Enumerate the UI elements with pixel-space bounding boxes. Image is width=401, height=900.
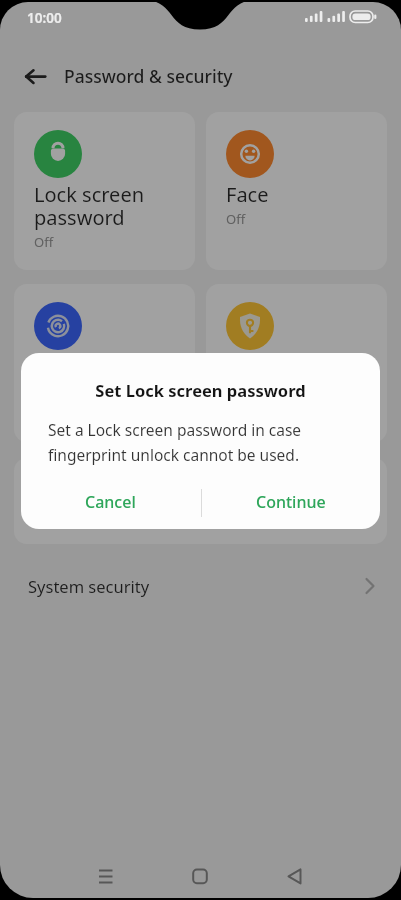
staticText: Cancel <box>85 491 136 513</box>
staticText: Set Lock screen password <box>21 379 380 401</box>
button[interactable] <box>18 62 54 92</box>
button[interactable]: Lock screen password <box>14 112 195 270</box>
staticText: Password & security <box>64 64 233 88</box>
button[interactable]: Continue <box>201 479 380 525</box>
button[interactable] <box>172 860 228 894</box>
staticText: Face <box>226 181 269 208</box>
staticText: Off <box>226 210 246 228</box>
button[interactable] <box>267 860 323 894</box>
staticText: Continue <box>256 491 326 513</box>
staticText: System security <box>28 575 363 597</box>
staticText: Lock screen password <box>34 181 145 231</box>
button[interactable]: System security <box>0 558 401 614</box>
button[interactable]: Cancel <box>21 479 200 525</box>
button[interactable]: Privacy <box>206 284 387 442</box>
staticText: Set a Lock screen password in case finge… <box>48 419 302 465</box>
button[interactable]: Fingerprint <box>14 284 195 442</box>
button[interactable] <box>78 860 134 894</box>
staticText: Off <box>34 233 54 251</box>
staticText: Off <box>226 382 246 400</box>
button[interactable]: Face <box>206 112 387 270</box>
staticText: 10:00 <box>27 9 62 27</box>
